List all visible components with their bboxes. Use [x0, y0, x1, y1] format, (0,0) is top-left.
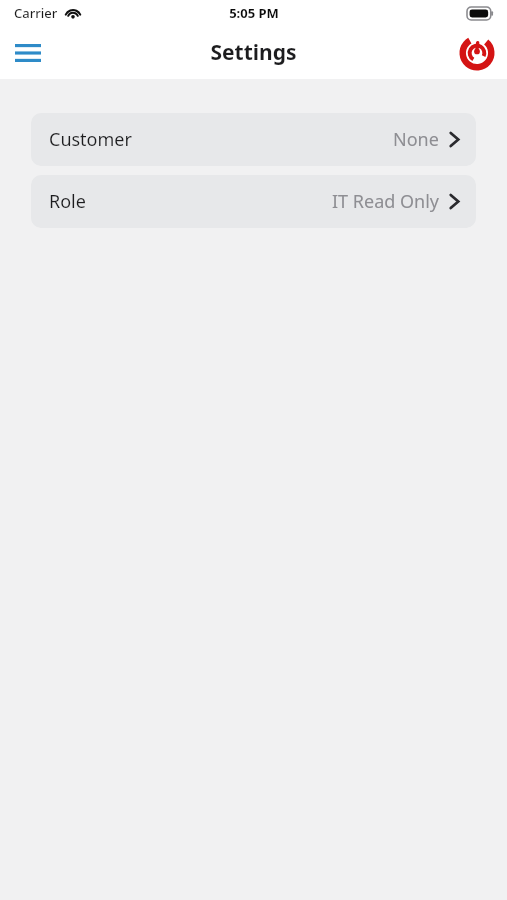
staticText: Role [49, 189, 86, 214]
staticText: Carrier [14, 4, 58, 22]
staticText: None [393, 127, 439, 152]
staticText: Settings [210, 38, 297, 67]
staticText: IT Read Only [332, 189, 439, 214]
button[interactable]: Logo [455, 31, 499, 75]
staticText: 5:05 PM [229, 4, 279, 22]
staticText: Customer [49, 127, 132, 152]
button[interactable]: Role [31, 175, 476, 228]
button[interactable]: Customer [31, 113, 476, 166]
button[interactable]: Menu [6, 31, 50, 75]
